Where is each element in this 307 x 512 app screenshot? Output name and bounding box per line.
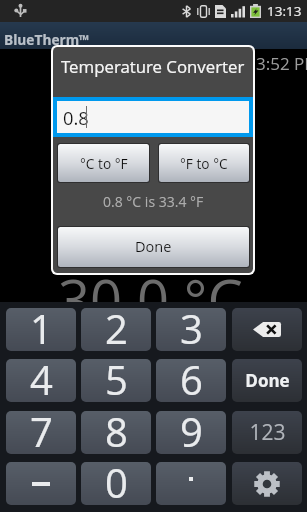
staticText: 1 [30,308,53,344]
staticText: 0.8 °C is 33.4 °F [103,192,204,208]
staticText: 3 [180,308,203,344]
button[interactable]: 4 [6,359,76,402]
staticText: BlueTherm™ [4,30,90,49]
button[interactable]: 6 [156,359,226,402]
staticText: Temperature Converter [61,55,245,78]
staticText: 7 [30,411,53,447]
button[interactable]: 3 [156,308,226,351]
staticText: Done [135,237,172,257]
button[interactable]: 9 [156,411,226,454]
button[interactable]: Settings [232,462,302,505]
staticText: 3:52 PM [256,52,307,75]
button[interactable]: °F to °C [159,144,249,182]
button[interactable]: 0 [81,462,151,505]
button[interactable]: °C to °F [58,144,149,182]
button[interactable]: Minus [6,462,76,505]
staticText: 5 [105,359,128,395]
button[interactable]: Done [232,359,302,402]
staticText: °C to °F [80,154,128,173]
button[interactable]: 8 [81,411,151,454]
staticText: 0 [105,462,128,498]
staticText: Done [245,369,290,392]
staticText: 6 [180,359,203,395]
staticText: 13:13 [267,2,302,20]
staticText: 8 [105,411,128,447]
staticText: 2 [105,308,128,344]
button[interactable]: 7 [6,411,76,454]
staticText: 123 [249,418,286,447]
button[interactable]: BlueTherm™ [0,22,307,49]
staticText: 9 [180,411,203,447]
button[interactable]: Done [58,227,249,267]
button[interactable]: 123 [232,411,302,454]
button[interactable]: Decimal point [156,462,226,505]
button[interactable]: 2 [81,308,151,351]
staticText: 4 [30,359,53,395]
button[interactable]: Delete [232,308,302,351]
staticText: 0.8 [63,105,89,130]
staticText: 30.0 °C [58,261,243,337]
staticText: °F to °C [180,154,228,173]
button[interactable]: 1 [6,308,76,351]
button[interactable]: 5 [81,359,151,402]
